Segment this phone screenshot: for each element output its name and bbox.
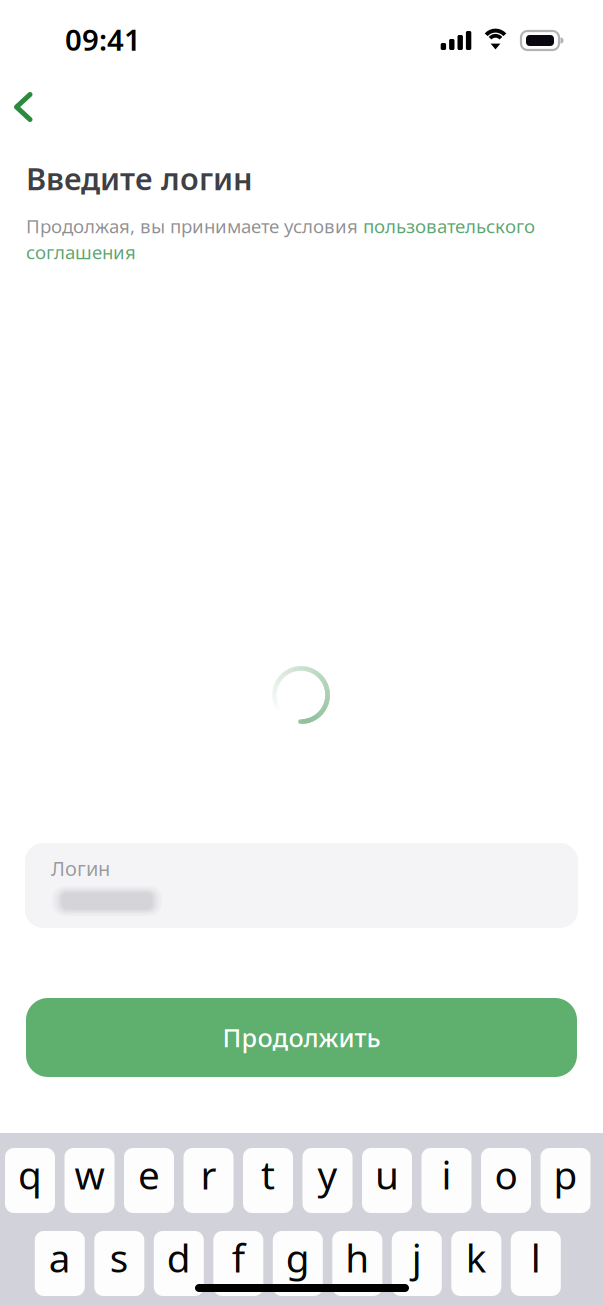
button[interactable]: Продолжая, вы принимаете условия пользов… (26, 214, 578, 264)
button[interactable]: s (94, 1231, 144, 1296)
staticText: q (18, 1149, 42, 1200)
staticText: Введите логин (26, 158, 253, 199)
button[interactable]: w (64, 1148, 114, 1213)
button[interactable]: g (273, 1231, 323, 1296)
button[interactable]: f (213, 1231, 263, 1296)
button[interactable]: o (481, 1148, 531, 1213)
staticText: w (74, 1149, 104, 1200)
staticText: g (286, 1232, 310, 1283)
button[interactable]: Back (0, 77, 58, 138)
button[interactable]: h (332, 1231, 382, 1296)
button[interactable]: t (243, 1148, 293, 1213)
button[interactable]: r (183, 1148, 233, 1213)
staticText: k (466, 1232, 487, 1283)
staticText: r (200, 1149, 216, 1200)
button[interactable]: k (451, 1231, 501, 1296)
button[interactable]: Продолжить (26, 998, 577, 1077)
button[interactable]: i (421, 1148, 471, 1213)
staticText: y (317, 1149, 337, 1200)
staticText: Логин (51, 855, 110, 882)
staticText: t (261, 1149, 275, 1200)
staticText: j (412, 1232, 422, 1283)
staticText: l (531, 1232, 541, 1283)
staticText: e (138, 1149, 160, 1200)
staticText: h (345, 1232, 369, 1283)
staticText: f (232, 1232, 245, 1283)
button[interactable]: y (302, 1148, 352, 1213)
button[interactable]: j (392, 1231, 442, 1296)
staticText: i (441, 1149, 451, 1200)
button[interactable]: q (5, 1148, 55, 1213)
button[interactable]: p (540, 1148, 590, 1213)
staticText: 09:41 (65, 20, 141, 59)
button[interactable]: a (35, 1231, 85, 1296)
staticText: u (375, 1149, 399, 1200)
button[interactable]: d (154, 1231, 204, 1296)
button[interactable]: e (124, 1148, 174, 1213)
staticText: d (167, 1232, 191, 1283)
staticText: Продолжая, вы принимаете условия пользов… (26, 214, 535, 264)
staticText: a (49, 1232, 71, 1283)
button[interactable]: u (362, 1148, 412, 1213)
staticText: o (494, 1149, 517, 1200)
staticText: p (553, 1149, 577, 1200)
staticText: s (110, 1232, 129, 1283)
button[interactable]: l (511, 1231, 561, 1296)
staticText: Продолжить (222, 1021, 380, 1054)
